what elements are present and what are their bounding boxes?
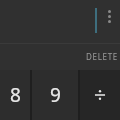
staticText: 8 — [10, 82, 21, 108]
button[interactable]: 8 — [0, 70, 30, 120]
staticText: 9 — [50, 82, 61, 108]
staticText: DELETE — [85, 51, 118, 62]
button[interactable]: 9 — [32, 70, 78, 120]
button[interactable]: DELETE — [80, 44, 120, 69]
button[interactable]: More options — [102, 6, 116, 26]
button[interactable]: Divide — [80, 70, 120, 120]
